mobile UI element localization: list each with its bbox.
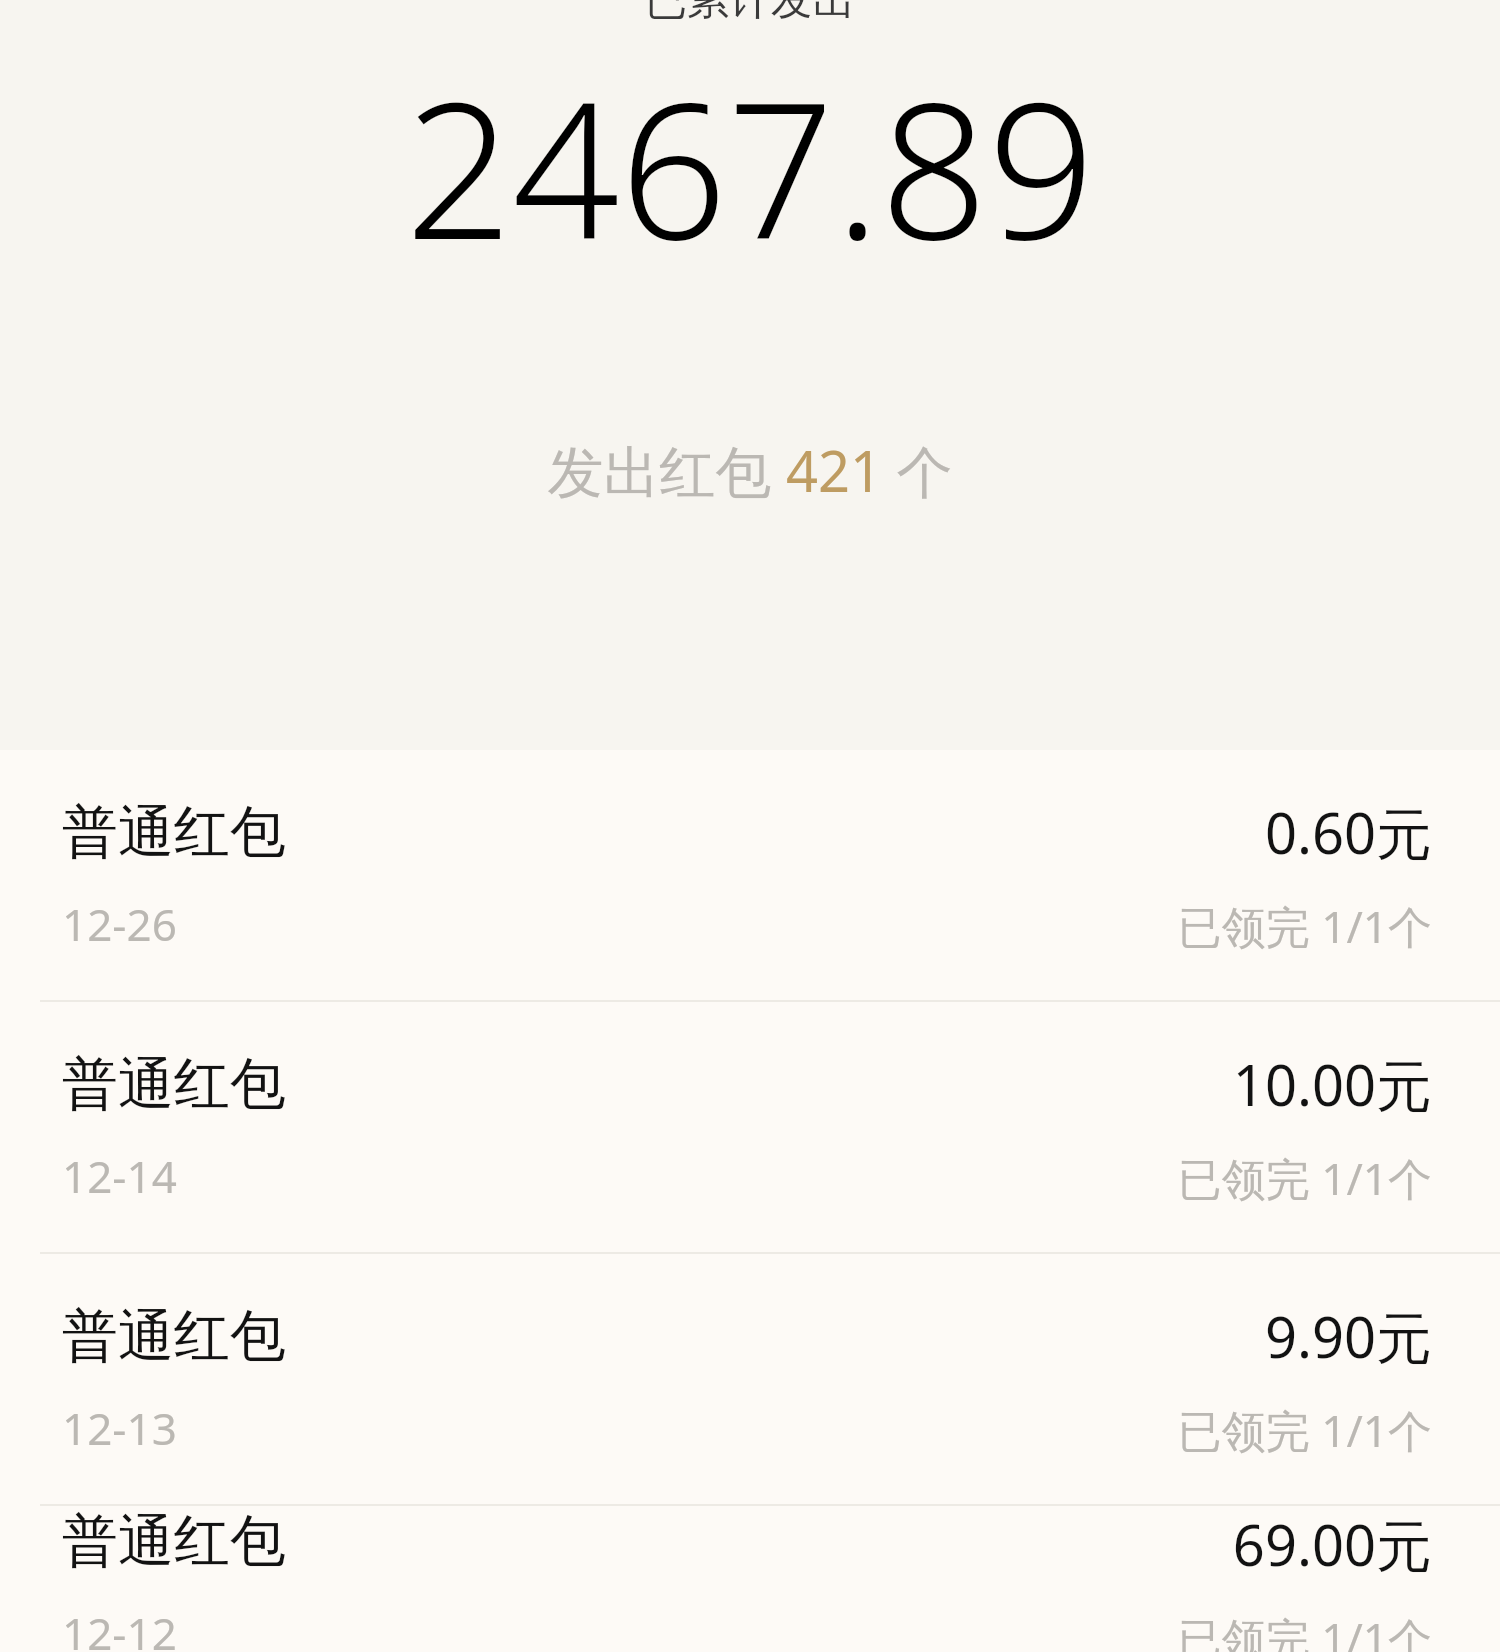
- staticText: 已领完 1/1个: [1177, 896, 1432, 956]
- staticText: 已领完 1/1个: [1177, 1400, 1432, 1460]
- staticText: 已领完 1/1个: [1177, 1148, 1432, 1208]
- staticText: 12-12: [62, 1603, 177, 1652]
- staticText: 普通红包: [62, 1301, 286, 1372]
- staticText: 普通红包: [62, 797, 286, 868]
- button[interactable]: 普通红包: [0, 750, 1500, 1000]
- staticText: 已累计发出: [645, 0, 855, 27]
- staticText: 12-13: [62, 1398, 177, 1458]
- staticText: 已领完 1/1个: [1177, 1608, 1432, 1652]
- staticText: 发出红包 421 个: [547, 432, 953, 508]
- staticText: 10.00元: [1232, 1046, 1432, 1122]
- button[interactable]: 普通红包: [0, 1506, 1500, 1652]
- staticText: 12-26: [62, 894, 177, 954]
- staticText: 12-14: [62, 1146, 177, 1206]
- button[interactable]: 普通红包: [0, 1254, 1500, 1504]
- button[interactable]: 普通红包: [0, 1002, 1500, 1252]
- staticText: 69.00元: [1232, 1506, 1432, 1582]
- staticText: 普通红包: [62, 1049, 286, 1120]
- staticText: 2467.89: [405, 38, 1095, 294]
- staticText: 9.90元: [1264, 1298, 1432, 1374]
- staticText: 普通红包: [62, 1506, 286, 1577]
- staticText: 0.60元: [1264, 794, 1432, 870]
